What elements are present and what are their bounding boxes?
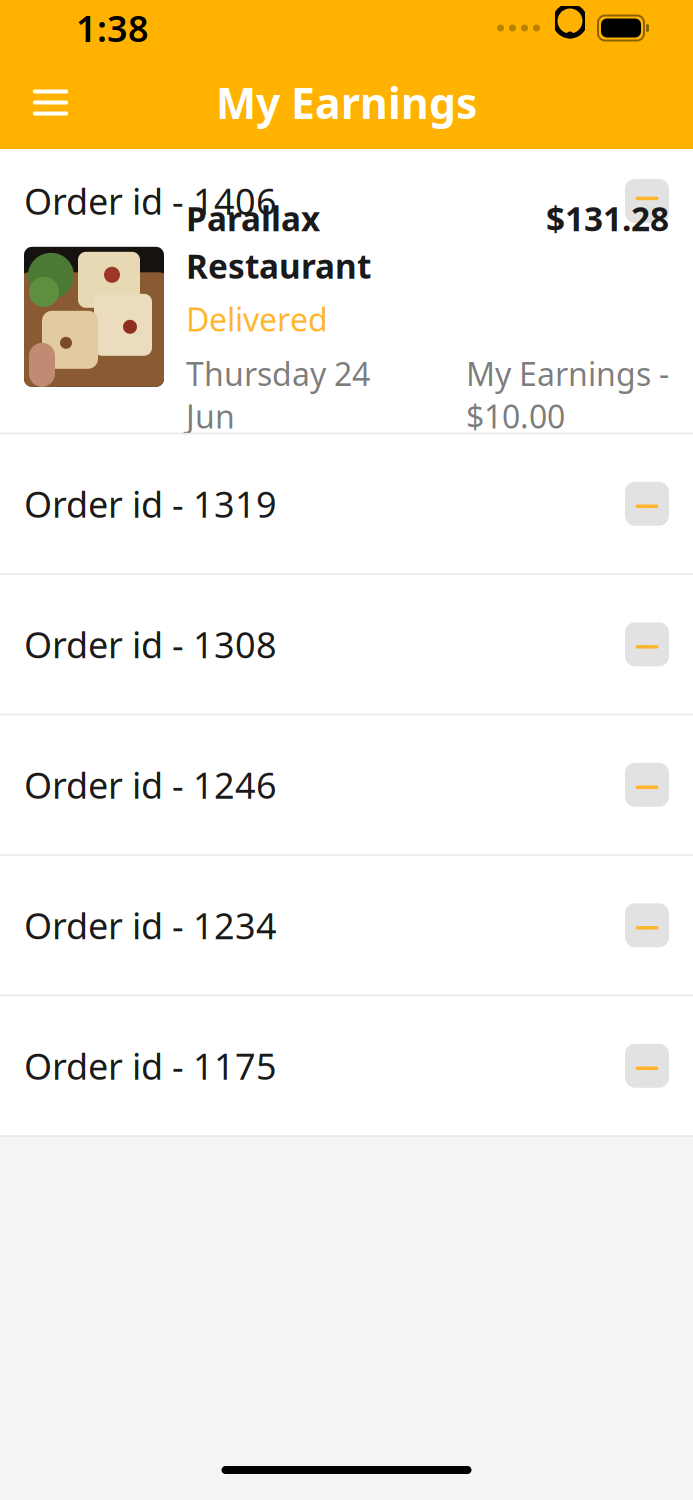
staticText: Order id - 1308 xyxy=(24,620,277,668)
staticText: My Earnings xyxy=(216,74,477,131)
button[interactable]: Order id - 1175 xyxy=(0,996,693,1135)
button[interactable]: Expand order xyxy=(625,1044,669,1088)
staticText: Thursday 24 Jun xyxy=(186,352,370,437)
button[interactable]: Collapse order xyxy=(625,179,669,223)
button[interactable]: Expand order xyxy=(625,903,669,947)
staticText: Order id - 1246 xyxy=(24,761,277,809)
button[interactable]: Order id - 1234 xyxy=(0,856,693,995)
button[interactable]: Order id - 1246 xyxy=(0,715,693,854)
button[interactable]: Expand order xyxy=(625,622,669,666)
staticText: Parallax xyxy=(186,196,320,241)
button[interactable]: Expand order xyxy=(625,763,669,807)
staticText: Order id - 1406 xyxy=(24,177,277,225)
staticText: $131.28 xyxy=(546,196,669,241)
staticText: Restaurant xyxy=(186,244,371,288)
button[interactable]: Menu xyxy=(13,73,88,131)
staticText: Order id - 1234 xyxy=(24,901,277,949)
staticText: 1:38 xyxy=(76,4,149,52)
staticText: Delivered xyxy=(186,298,328,340)
button[interactable]: Order id - 1308 xyxy=(0,575,693,714)
staticText: My Earnings - $10.00 xyxy=(466,352,669,437)
button[interactable]: Order id - 1319 xyxy=(0,434,693,573)
button[interactable]: Expand order xyxy=(625,482,669,526)
staticText: Order id - 1175 xyxy=(24,1042,277,1090)
staticText: Order id - 1319 xyxy=(24,480,277,528)
